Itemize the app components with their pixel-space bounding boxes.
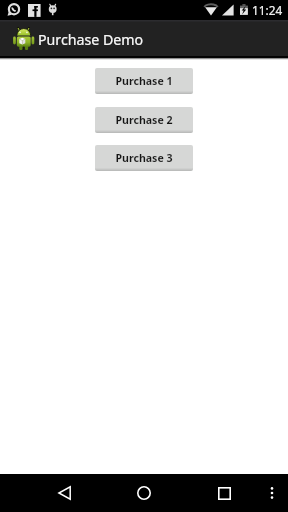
staticText: Purchase Demo [38, 30, 144, 49]
button[interactable]: Purchase 2 [95, 107, 193, 133]
button[interactable]: More options [260, 481, 284, 505]
button[interactable]: Purchase 3 [95, 145, 193, 171]
staticText: Purchase 2 [115, 113, 173, 127]
staticText: 11:24 [252, 2, 283, 18]
button[interactable]: Purchase 1 [95, 68, 193, 94]
staticText: Purchase 1 [115, 74, 173, 88]
button[interactable]: Recent apps [208, 477, 240, 509]
button[interactable]: Home [128, 477, 160, 509]
button[interactable]: Back [48, 477, 80, 509]
staticText: Purchase 3 [115, 151, 173, 165]
